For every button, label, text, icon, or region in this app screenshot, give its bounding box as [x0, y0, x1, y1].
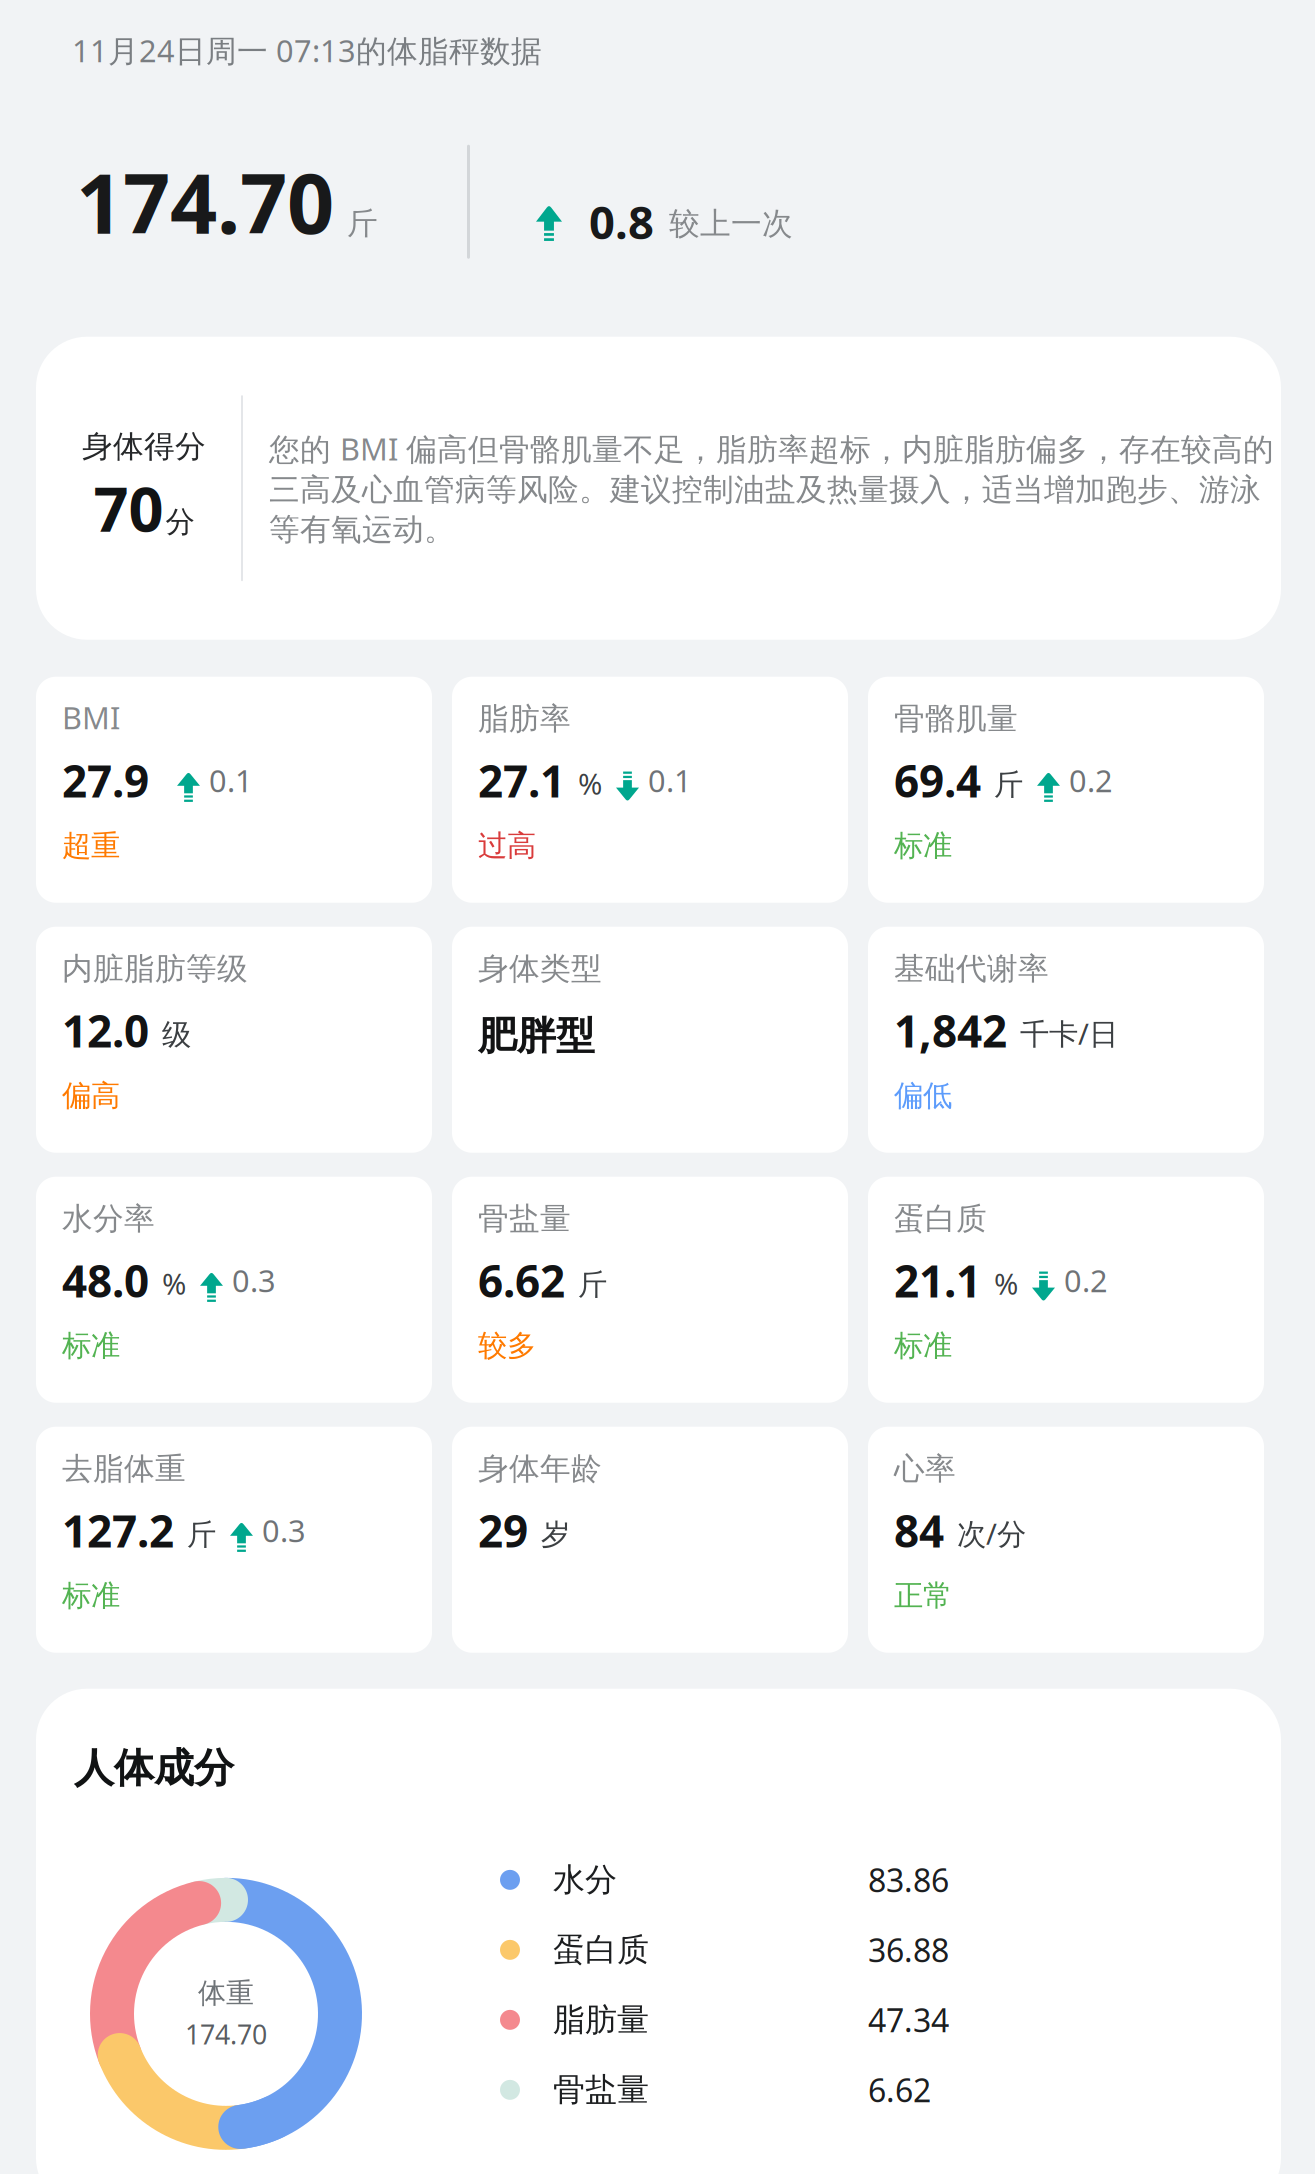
staticText: 斤 — [578, 1267, 607, 1303]
staticText: 内脏脂肪等级 — [62, 950, 248, 988]
button[interactable]: 水分率 — [36, 1177, 432, 1403]
staticText: 千卡/日 — [1020, 1014, 1118, 1053]
staticText: 69.4 — [894, 751, 981, 810]
staticText: 0.3 — [232, 1260, 276, 1301]
staticText: 斤 — [347, 205, 378, 242]
button[interactable]: 心率 — [868, 1427, 1264, 1653]
button[interactable]: 去脂体重 — [36, 1427, 432, 1653]
staticText: 127.2 — [62, 1501, 174, 1560]
staticText: 较上一次 — [669, 205, 793, 243]
staticText: 骨盐量 — [478, 1200, 571, 1238]
staticText: 0.1 — [648, 760, 692, 801]
staticText: 0.2 — [1064, 1260, 1108, 1301]
staticText: 27.9 — [62, 751, 149, 810]
staticText: 超重 — [62, 828, 120, 864]
staticText: 0.2 — [1069, 760, 1113, 801]
staticText: 27.1 — [478, 751, 565, 810]
staticText: 斤 — [994, 767, 1023, 803]
staticText: 21.1 — [894, 1251, 981, 1310]
staticText: 36.88 — [868, 1929, 949, 1971]
staticText: 身体类型 — [478, 950, 602, 988]
staticText: 偏高 — [62, 1078, 120, 1114]
staticText: 标准 — [62, 1328, 120, 1364]
staticText: 11月24日周一 07:13的体脂秤数据 — [72, 30, 542, 71]
staticText: 正常 — [894, 1578, 952, 1614]
staticText: 肥胖型 — [478, 1012, 595, 1060]
staticText: 47.34 — [868, 1999, 949, 2041]
staticText: 您的 BMI 偏高但骨骼肌量不足，脂肪率超标，内脏脂肪偏多，存在较高的三高及心血… — [269, 428, 1274, 548]
staticText: 脂肪率 — [478, 700, 571, 738]
button[interactable]: 身体年龄 — [452, 1427, 848, 1653]
staticText: 0.3 — [262, 1510, 306, 1551]
staticText: 斤 — [187, 1517, 216, 1553]
button[interactable]: BMI — [36, 677, 432, 903]
staticText: 83.86 — [868, 1859, 949, 1901]
staticText: 去脂体重 — [62, 1450, 186, 1488]
staticText: 174.70 — [185, 2016, 267, 2052]
button[interactable]: 脂肪率 — [452, 677, 848, 903]
button[interactable]: 骨骼肌量 — [868, 677, 1264, 903]
staticText: 岁 — [541, 1517, 570, 1553]
staticText: 偏低 — [894, 1078, 952, 1114]
staticText: 人体成分 — [74, 1744, 234, 1793]
staticText: 身体得分 — [82, 428, 206, 465]
staticText: 骨骼肌量 — [894, 700, 1018, 738]
staticText: 12.0 — [62, 1001, 149, 1060]
staticText: 次/分 — [957, 1514, 1026, 1553]
staticText: BMI — [62, 697, 120, 738]
staticText: 水分 — [553, 1860, 617, 1899]
staticText: 6.62 — [478, 1251, 565, 1310]
staticText: 标准 — [894, 828, 952, 864]
button[interactable]: 内脏脂肪等级 — [36, 927, 432, 1153]
staticText: 较多 — [478, 1328, 536, 1364]
staticText: 蛋白质 — [894, 1200, 987, 1238]
staticText: 6.62 — [868, 2069, 931, 2111]
staticText: % — [162, 1264, 186, 1303]
staticText: 29 — [478, 1501, 528, 1560]
staticText: 基础代谢率 — [894, 950, 1049, 988]
staticText: 分 — [165, 504, 194, 540]
staticText: 标准 — [62, 1578, 120, 1614]
staticText: 84 — [894, 1501, 944, 1560]
staticText: 体重 — [198, 1976, 254, 2010]
staticText: % — [578, 764, 602, 803]
staticText: 0.1 — [209, 760, 253, 801]
staticText: 级 — [162, 1017, 191, 1053]
staticText: 身体年龄 — [478, 1450, 602, 1488]
staticText: 174.70 — [76, 147, 334, 257]
staticText: 48.0 — [62, 1251, 149, 1310]
staticText: 1,842 — [894, 1001, 1007, 1060]
staticText: 脂肪量 — [553, 2000, 649, 2039]
staticText: 蛋白质 — [553, 1930, 649, 1969]
staticText: % — [994, 1264, 1018, 1303]
staticText: 骨盐量 — [553, 2070, 649, 2109]
staticText: 标准 — [894, 1328, 952, 1364]
staticText: 70 — [93, 467, 163, 549]
staticText: 0.8 — [589, 191, 654, 252]
staticText: 心率 — [894, 1450, 956, 1488]
staticText: 水分率 — [62, 1200, 155, 1238]
button[interactable]: 基础代谢率 — [868, 927, 1264, 1153]
button[interactable]: 骨盐量 — [452, 1177, 848, 1403]
staticText: 过高 — [478, 828, 536, 864]
button[interactable]: 身体类型 — [452, 927, 848, 1153]
button[interactable]: 蛋白质 — [868, 1177, 1264, 1403]
